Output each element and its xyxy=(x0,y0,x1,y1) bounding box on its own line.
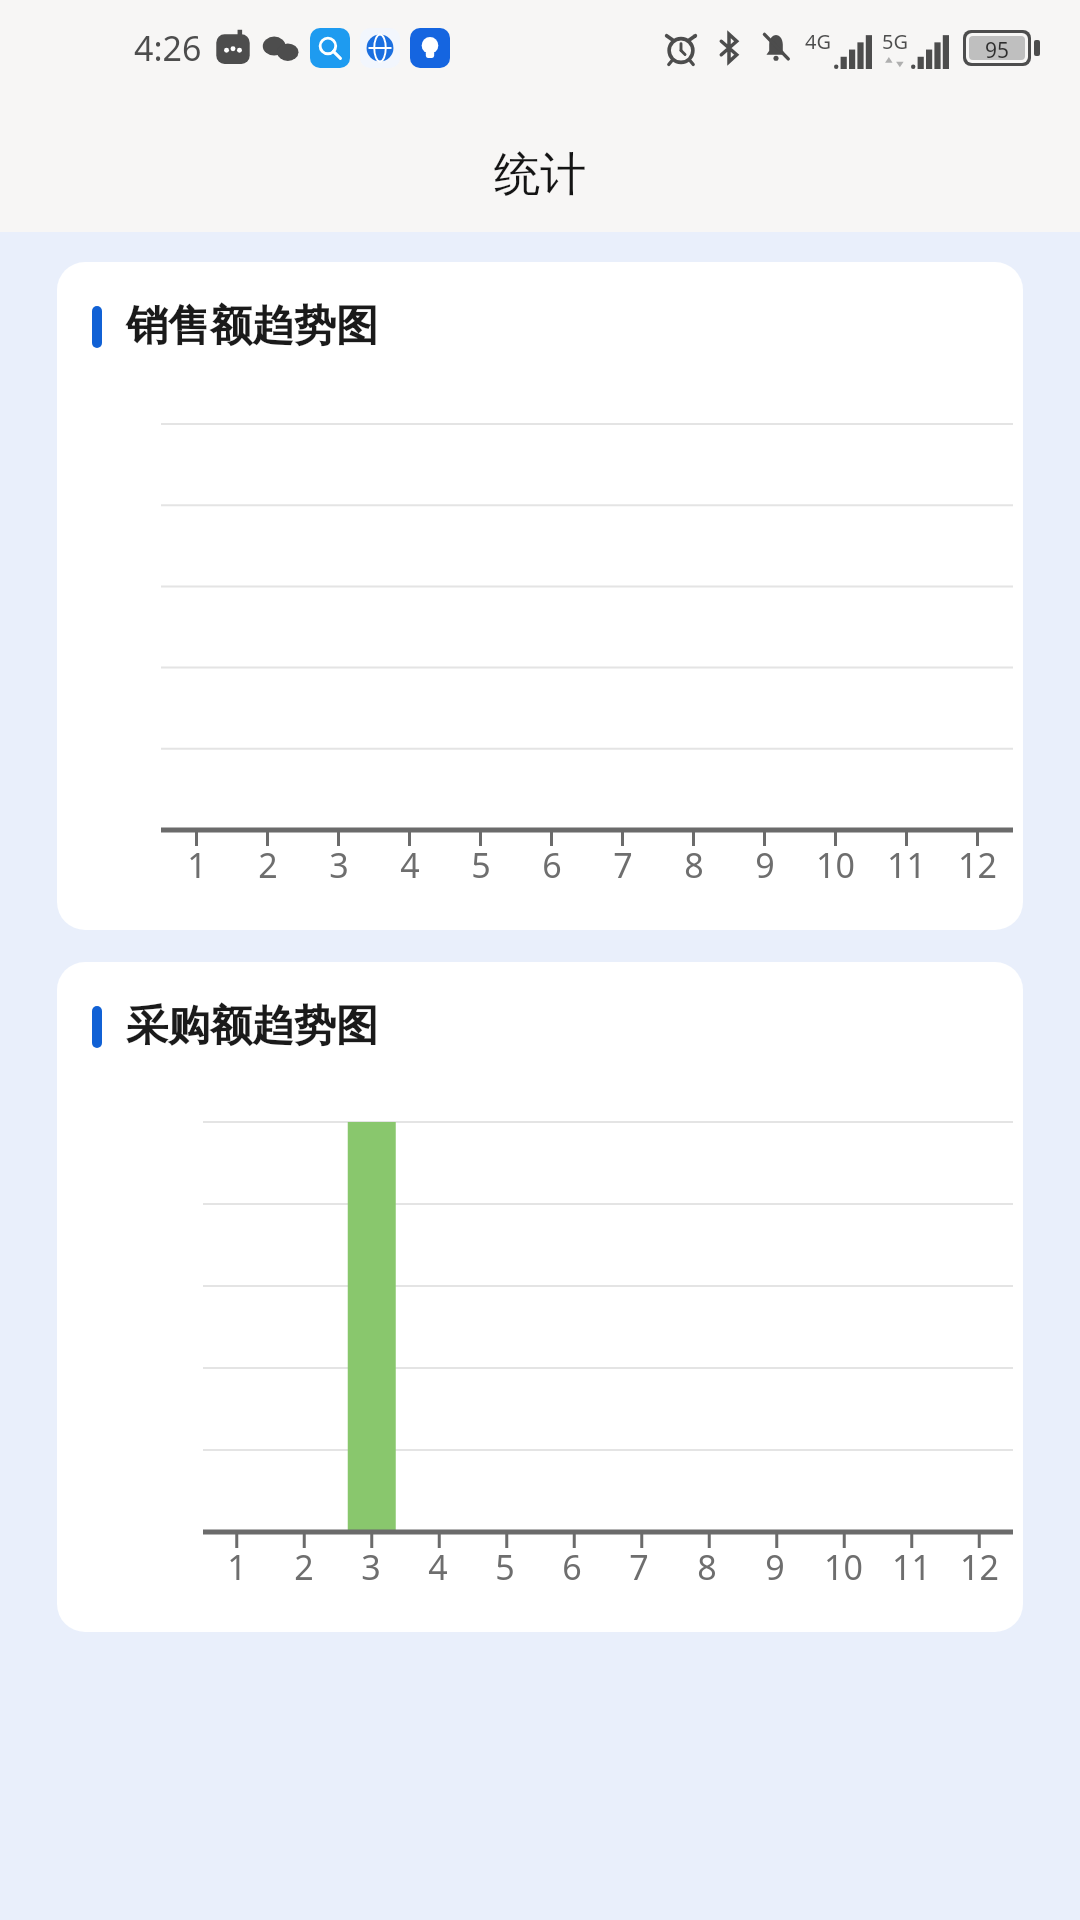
button[interactable]: 采购额趋势图 xyxy=(57,962,1023,1632)
staticText: 11 xyxy=(887,842,926,888)
staticText: 6 xyxy=(562,1544,582,1590)
staticText: 4 xyxy=(428,1544,448,1590)
staticText: 95 xyxy=(985,36,1010,60)
staticText: 6 xyxy=(542,842,562,888)
staticText: 10 xyxy=(824,1544,863,1590)
staticText: 10 xyxy=(816,842,855,888)
staticText: 4G xyxy=(805,28,831,55)
staticText: 7 xyxy=(613,842,633,888)
staticText: 8 xyxy=(684,842,704,888)
staticText: 统计 xyxy=(494,146,586,204)
staticText: 销售额趋势图 xyxy=(126,300,378,353)
staticText: 4:26 xyxy=(134,25,202,71)
staticText: 5G xyxy=(882,28,908,55)
staticText: 5 xyxy=(471,842,491,888)
staticText: 9 xyxy=(755,842,775,888)
staticText: 2 xyxy=(294,1544,314,1590)
button[interactable]: 销售额趋势图 xyxy=(57,262,1023,930)
staticText: 3 xyxy=(361,1544,381,1590)
staticText: 采购额趋势图 xyxy=(126,1000,378,1053)
staticText: 4 xyxy=(400,842,420,888)
staticText: 2 xyxy=(258,842,278,888)
staticText: 12 xyxy=(960,1544,999,1590)
staticText: 7 xyxy=(629,1544,649,1590)
staticText: 12 xyxy=(958,842,997,888)
staticText: 8 xyxy=(697,1544,717,1590)
staticText: 9 xyxy=(765,1544,785,1590)
staticText: 5 xyxy=(495,1544,515,1590)
staticText: 1 xyxy=(227,1544,247,1590)
staticText: 11 xyxy=(892,1544,931,1590)
staticText: 1 xyxy=(187,842,207,888)
staticText: 3 xyxy=(329,842,349,888)
